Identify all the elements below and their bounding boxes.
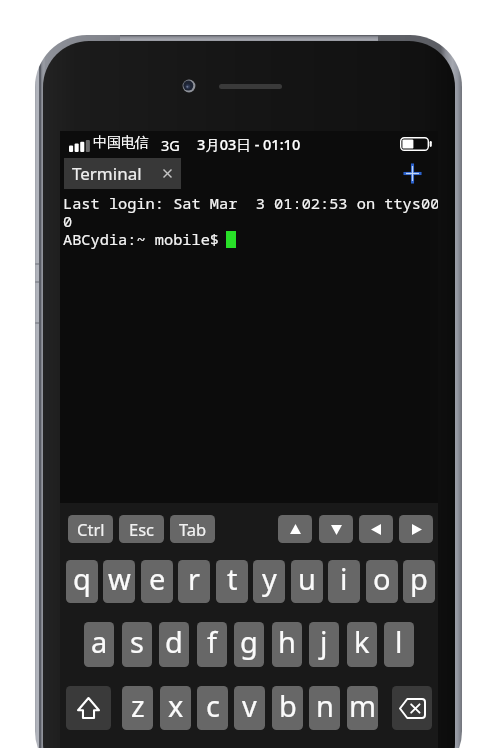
button[interactable]: u: [291, 560, 323, 603]
staticText: a: [91, 622, 108, 661]
button[interactable]: s: [122, 622, 152, 667]
button[interactable]: n: [309, 686, 340, 730]
staticText: f: [207, 622, 217, 661]
button[interactable]: Ctrl: [68, 515, 113, 543]
staticText: q: [73, 560, 91, 598]
staticText: l: [395, 622, 403, 661]
button[interactable]: o: [366, 560, 398, 603]
button[interactable]: t: [216, 560, 248, 603]
staticText: 中国电信: [93, 134, 149, 152]
button[interactable]: i: [328, 560, 360, 603]
button[interactable]: q: [66, 560, 98, 603]
staticText: Ctrl: [77, 518, 105, 540]
button[interactable]: Down: [319, 515, 353, 543]
button[interactable]: x: [160, 686, 191, 730]
staticText: n: [316, 686, 334, 725]
staticText: d: [165, 622, 183, 661]
button[interactable]: Left: [359, 515, 393, 543]
button[interactable]: h: [272, 622, 302, 667]
button[interactable]: Esc: [119, 515, 164, 543]
button[interactable]: Tab: [170, 515, 215, 543]
button[interactable]: e: [141, 560, 173, 603]
staticText: y: [262, 560, 277, 598]
button[interactable]: Right: [399, 515, 433, 543]
button[interactable]: m: [347, 686, 378, 730]
button[interactable]: w: [103, 560, 135, 603]
staticText: z: [131, 686, 145, 725]
staticText: p: [410, 560, 428, 598]
staticText: j: [320, 622, 328, 661]
button[interactable]: Terminal: [64, 158, 181, 189]
staticText: i: [340, 560, 348, 598]
staticText: c: [206, 686, 220, 725]
staticText: m: [349, 686, 377, 725]
staticText: o: [373, 560, 391, 598]
staticText: Last login: Sat Mar 3 01:02:53 on ttys00: [63, 193, 438, 214]
button[interactable]: r: [178, 560, 210, 603]
staticText: Terminal: [72, 162, 142, 185]
button[interactable]: j: [309, 622, 339, 667]
button[interactable]: c: [197, 686, 228, 730]
button[interactable]: b: [272, 686, 303, 730]
button[interactable]: Backspace: [392, 686, 432, 730]
staticText: 3月03日 - 01:10: [197, 134, 301, 154]
button[interactable]: f: [197, 622, 227, 667]
button[interactable]: y: [253, 560, 285, 603]
staticText: r: [188, 560, 200, 598]
staticText: Tab: [179, 518, 207, 540]
staticText: u: [298, 560, 316, 598]
button[interactable]: l: [384, 622, 414, 667]
staticText: s: [130, 622, 144, 661]
button[interactable]: Up: [278, 515, 312, 543]
staticText: g: [240, 622, 258, 661]
staticText: t: [227, 560, 238, 598]
staticText: k: [354, 622, 370, 661]
button[interactable]: p: [403, 560, 435, 603]
staticText: ABCydia:~ mobile$: [63, 229, 363, 250]
staticText: 3G: [161, 135, 180, 155]
button[interactable]: k: [347, 622, 377, 667]
staticText: x: [168, 686, 184, 725]
button[interactable]: New tab: [391, 157, 433, 190]
staticText: w: [108, 560, 131, 598]
staticText: h: [278, 622, 296, 661]
staticText: e: [149, 560, 166, 598]
staticText: 0: [63, 211, 73, 232]
button[interactable]: a: [84, 622, 114, 667]
button[interactable]: d: [159, 622, 189, 667]
staticText: v: [242, 686, 257, 725]
button[interactable]: g: [234, 622, 264, 667]
button[interactable]: v: [234, 686, 265, 730]
staticText: b: [279, 686, 297, 725]
button[interactable]: Shift: [66, 686, 111, 730]
button[interactable]: z: [122, 686, 153, 730]
staticText: Esc: [129, 518, 154, 540]
